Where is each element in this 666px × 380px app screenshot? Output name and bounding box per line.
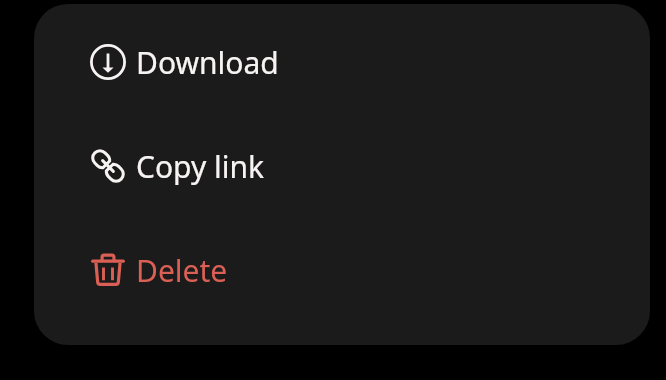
button[interactable]: Download: [34, 10, 650, 114]
staticText: Copy link: [136, 146, 265, 187]
staticText: Delete: [136, 250, 228, 291]
button[interactable]: Copy link: [34, 114, 650, 218]
button[interactable]: Delete: [34, 218, 650, 322]
staticText: Download: [136, 42, 279, 83]
